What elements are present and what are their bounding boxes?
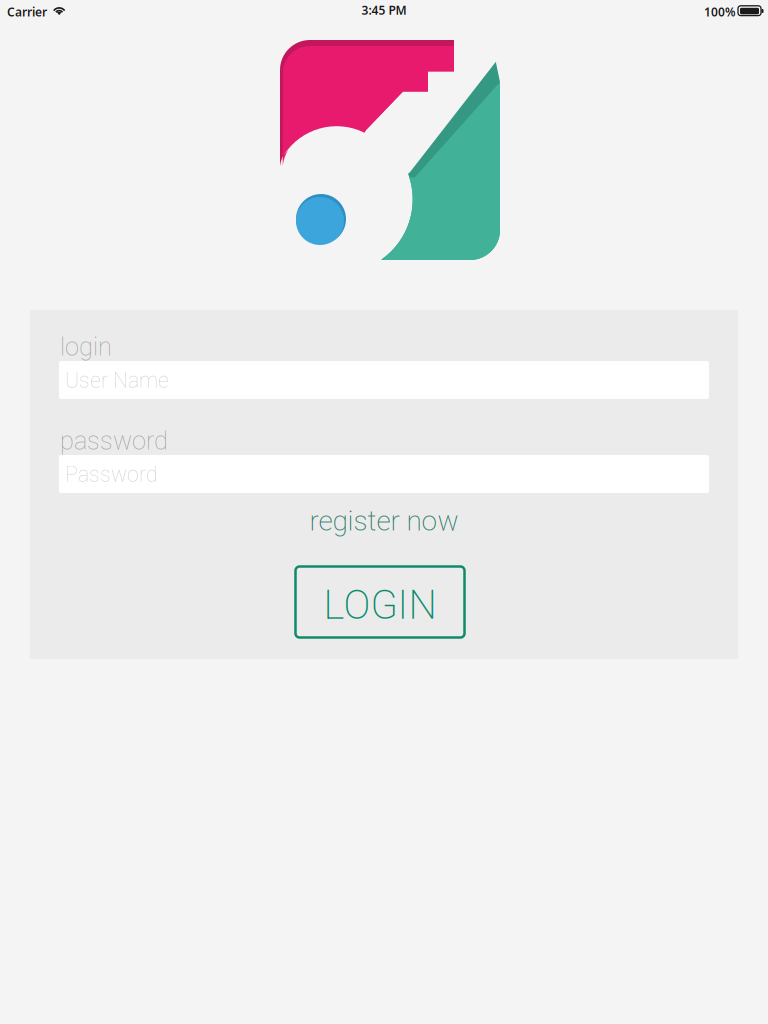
button[interactable]: register now (30, 504, 738, 538)
staticText: 3:45 PM (361, 2, 406, 18)
staticText: login (60, 332, 112, 362)
staticText: 100% (704, 4, 736, 20)
staticText: User Name (65, 368, 169, 393)
staticText: Password (65, 462, 158, 487)
staticText: Carrier (7, 4, 47, 20)
staticText: password (60, 426, 168, 456)
staticText: LOGIN (323, 582, 436, 628)
button[interactable]: LOGIN (295, 566, 464, 637)
staticText: register now (309, 505, 458, 537)
